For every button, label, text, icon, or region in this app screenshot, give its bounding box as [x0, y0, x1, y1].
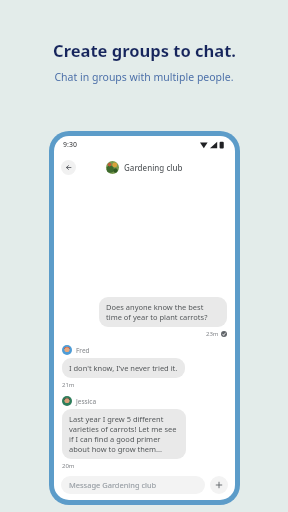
staticText: Last year I grew 5 different varieties o… — [69, 414, 179, 454]
staticText: 23m — [206, 330, 219, 338]
staticText: Gardening club — [124, 162, 183, 173]
staticText: Does anyone know the best time of year t… — [106, 302, 220, 322]
staticText: Create groups to chat. — [53, 39, 236, 61]
button[interactable]: Does anyone know the best time of year t… — [99, 297, 227, 327]
staticText: 20m — [62, 462, 75, 470]
staticText: I don't know, I've never tried it. — [69, 363, 178, 373]
staticText: Jessica — [76, 397, 97, 406]
staticText: Fred — [76, 346, 90, 355]
button[interactable]: I don't know, I've never tried it. — [62, 358, 185, 378]
staticText: Chat in groups with multiple people. — [54, 70, 234, 84]
button[interactable]: Message Gardening club — [61, 476, 205, 494]
button[interactable]: Add attachment — [210, 476, 228, 494]
button[interactable]: Back — [61, 160, 76, 175]
staticText: 9:30 — [63, 140, 77, 150]
button[interactable]: Gardening club — [106, 161, 183, 174]
button[interactable]: Last year I grew 5 different varieties o… — [62, 409, 186, 459]
staticText: Message Gardening club — [69, 480, 157, 490]
staticText: 21m — [62, 381, 75, 389]
